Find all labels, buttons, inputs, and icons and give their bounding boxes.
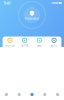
button[interactable]: Scan — [32, 38, 47, 47]
button[interactable]: Activity — [38, 89, 51, 100]
button[interactable]: Send — [17, 38, 32, 47]
button[interactable]: Top up — [3, 38, 17, 47]
staticText: Send — [21, 44, 28, 47]
button[interactable]: Cards — [13, 89, 26, 100]
button[interactable]: Home — [0, 89, 13, 100]
staticText: Protected — [25, 17, 39, 20]
staticText: More — [50, 44, 57, 47]
staticText: Scan — [37, 44, 42, 47]
staticText: Top up — [5, 44, 15, 47]
button[interactable]: Profile — [51, 89, 64, 100]
button[interactable]: Scan — [26, 89, 38, 100]
button[interactable]: More — [47, 38, 61, 47]
staticText: 9:41 — [3, 0, 10, 6]
